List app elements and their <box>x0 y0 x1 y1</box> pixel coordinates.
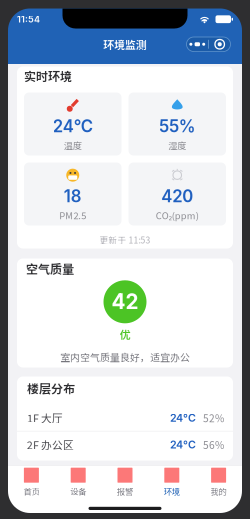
staticText: 56% <box>203 437 224 452</box>
staticText: 24°C <box>170 411 196 424</box>
staticText: 湿度 <box>168 138 186 152</box>
staticText: 24°C <box>53 116 93 136</box>
staticText: 18 <box>64 186 82 206</box>
staticText: 42 <box>111 289 138 314</box>
staticText: 设备 <box>70 485 86 497</box>
staticText: 24°C <box>170 438 196 451</box>
button[interactable]: 设备 <box>55 468 102 497</box>
staticText: 2F 办公区 <box>27 437 74 452</box>
button[interactable]: 2F 办公区 <box>17 432 233 458</box>
staticText: 优 <box>119 326 130 342</box>
staticText: 首页 <box>23 485 39 497</box>
staticText: 55% <box>159 116 196 136</box>
button[interactable]: 环境 <box>148 468 195 497</box>
staticText: 空气质量 <box>26 260 74 277</box>
staticText: 实时环境 <box>24 67 72 84</box>
staticText: 1F 大厅 <box>27 410 63 425</box>
staticText: 楼层分布 <box>27 379 75 397</box>
staticText: 室内空气质量良好，适宜办公 <box>60 350 190 364</box>
staticText: 420 <box>161 186 193 206</box>
staticText: 52% <box>203 410 224 425</box>
staticText: PM2.5 <box>59 208 86 222</box>
staticText: 环境监测 <box>103 36 147 52</box>
staticText: 环境 <box>164 485 180 497</box>
staticText: 我的 <box>211 485 227 497</box>
staticText: 报警 <box>117 485 133 497</box>
staticText: 更新于 11:53 <box>99 233 150 246</box>
staticText: 温度 <box>64 138 82 152</box>
button[interactable]: 报警 <box>102 468 148 497</box>
button[interactable]: 我的 <box>195 468 242 497</box>
staticText: CO₂(ppm) <box>156 208 199 222</box>
button[interactable]: Mini program menu <box>186 37 230 51</box>
button[interactable]: 首页 <box>8 468 55 497</box>
button[interactable]: 1F 大厅 <box>17 405 233 431</box>
staticText: 11:54 <box>17 14 40 25</box>
